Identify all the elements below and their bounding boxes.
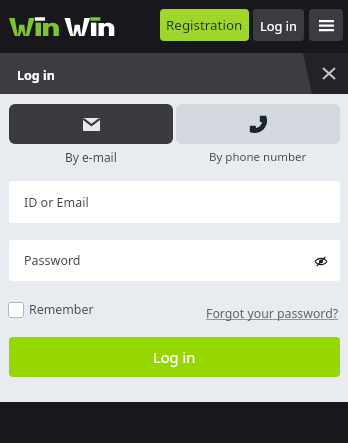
staticText: By e-mail (65, 149, 117, 165)
button[interactable]: Log in (9, 337, 340, 377)
button[interactable]: Forgot your password? (204, 301, 341, 326)
button[interactable]: By phone number (176, 104, 340, 144)
staticText: By phone number (209, 149, 307, 165)
staticText: Password (24, 252, 81, 269)
button[interactable]: Close (312, 58, 345, 89)
staticText: Log in (17, 67, 55, 84)
button[interactable]: Menu (309, 9, 343, 41)
button[interactable]: ID or Email (9, 181, 340, 223)
staticText: ID or Email (24, 194, 89, 211)
button[interactable]: By e-mail (9, 104, 173, 144)
staticText: Log in (153, 347, 196, 367)
button[interactable]: Log in (253, 9, 304, 41)
staticText: Registration (166, 16, 243, 34)
staticText: Log in (260, 17, 297, 34)
staticText: Remember (29, 301, 94, 318)
button[interactable]: Show password (309, 249, 333, 273)
button[interactable]: Password (9, 240, 340, 281)
button[interactable]: Remember (4, 297, 98, 322)
button[interactable]: Registration (160, 9, 249, 41)
